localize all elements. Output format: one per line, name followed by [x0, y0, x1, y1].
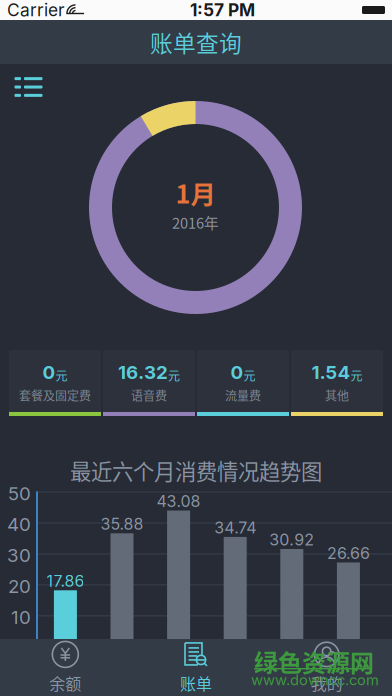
staticText: 元 [350, 367, 362, 384]
staticText: 20 [8, 575, 31, 597]
staticText: 账单 [180, 671, 212, 695]
button[interactable]: 1.54 [291, 350, 383, 415]
staticText: 43.08 [157, 491, 201, 511]
staticText: 元 [243, 367, 255, 384]
staticText: 26.66 [327, 543, 370, 563]
staticText: 元 [55, 367, 67, 384]
staticText: 35.88 [100, 514, 143, 534]
staticText: 30 [7, 544, 31, 567]
staticText: 语音费 [131, 387, 167, 404]
staticText: 最近六个月消费情况趋势图 [70, 455, 322, 486]
button[interactable]: 16.32 [103, 350, 195, 415]
button[interactable]: 0 [9, 350, 101, 415]
staticText: 34.74 [214, 518, 256, 537]
button[interactable]: 账单 [131, 639, 261, 696]
staticText: 1月 [175, 174, 215, 211]
staticText: 套餐及固定费 [19, 387, 91, 404]
staticText: 1.54 [311, 361, 350, 384]
staticText: 50 [8, 482, 31, 505]
staticText: 10 [11, 606, 31, 628]
staticText: 0 [42, 361, 55, 384]
button[interactable]: 余额 [0, 639, 131, 696]
staticText: 30.92 [269, 530, 314, 549]
button[interactable]: 我的 [261, 639, 392, 696]
staticText: www.downcc.com [251, 671, 379, 689]
staticText: Carrier [7, 0, 65, 20]
staticText: 0 [230, 361, 243, 384]
staticText: 流量费 [225, 387, 261, 404]
staticText: 其他 [325, 387, 349, 404]
staticText: 17.86 [46, 571, 84, 591]
button[interactable]: 0 [197, 350, 289, 415]
staticText: 我的 [311, 671, 343, 695]
staticText: 绿色资源网 [254, 644, 374, 679]
staticText: 账单查询 [150, 26, 242, 58]
staticText: 40 [7, 513, 31, 536]
staticText: 2016年 [172, 212, 219, 233]
staticText: 余额 [49, 671, 81, 695]
button[interactable]: Menu [4, 67, 52, 107]
staticText: 1:57 PM [190, 0, 255, 20]
staticText: 16.32 [118, 361, 168, 384]
staticText: 元 [168, 367, 180, 384]
